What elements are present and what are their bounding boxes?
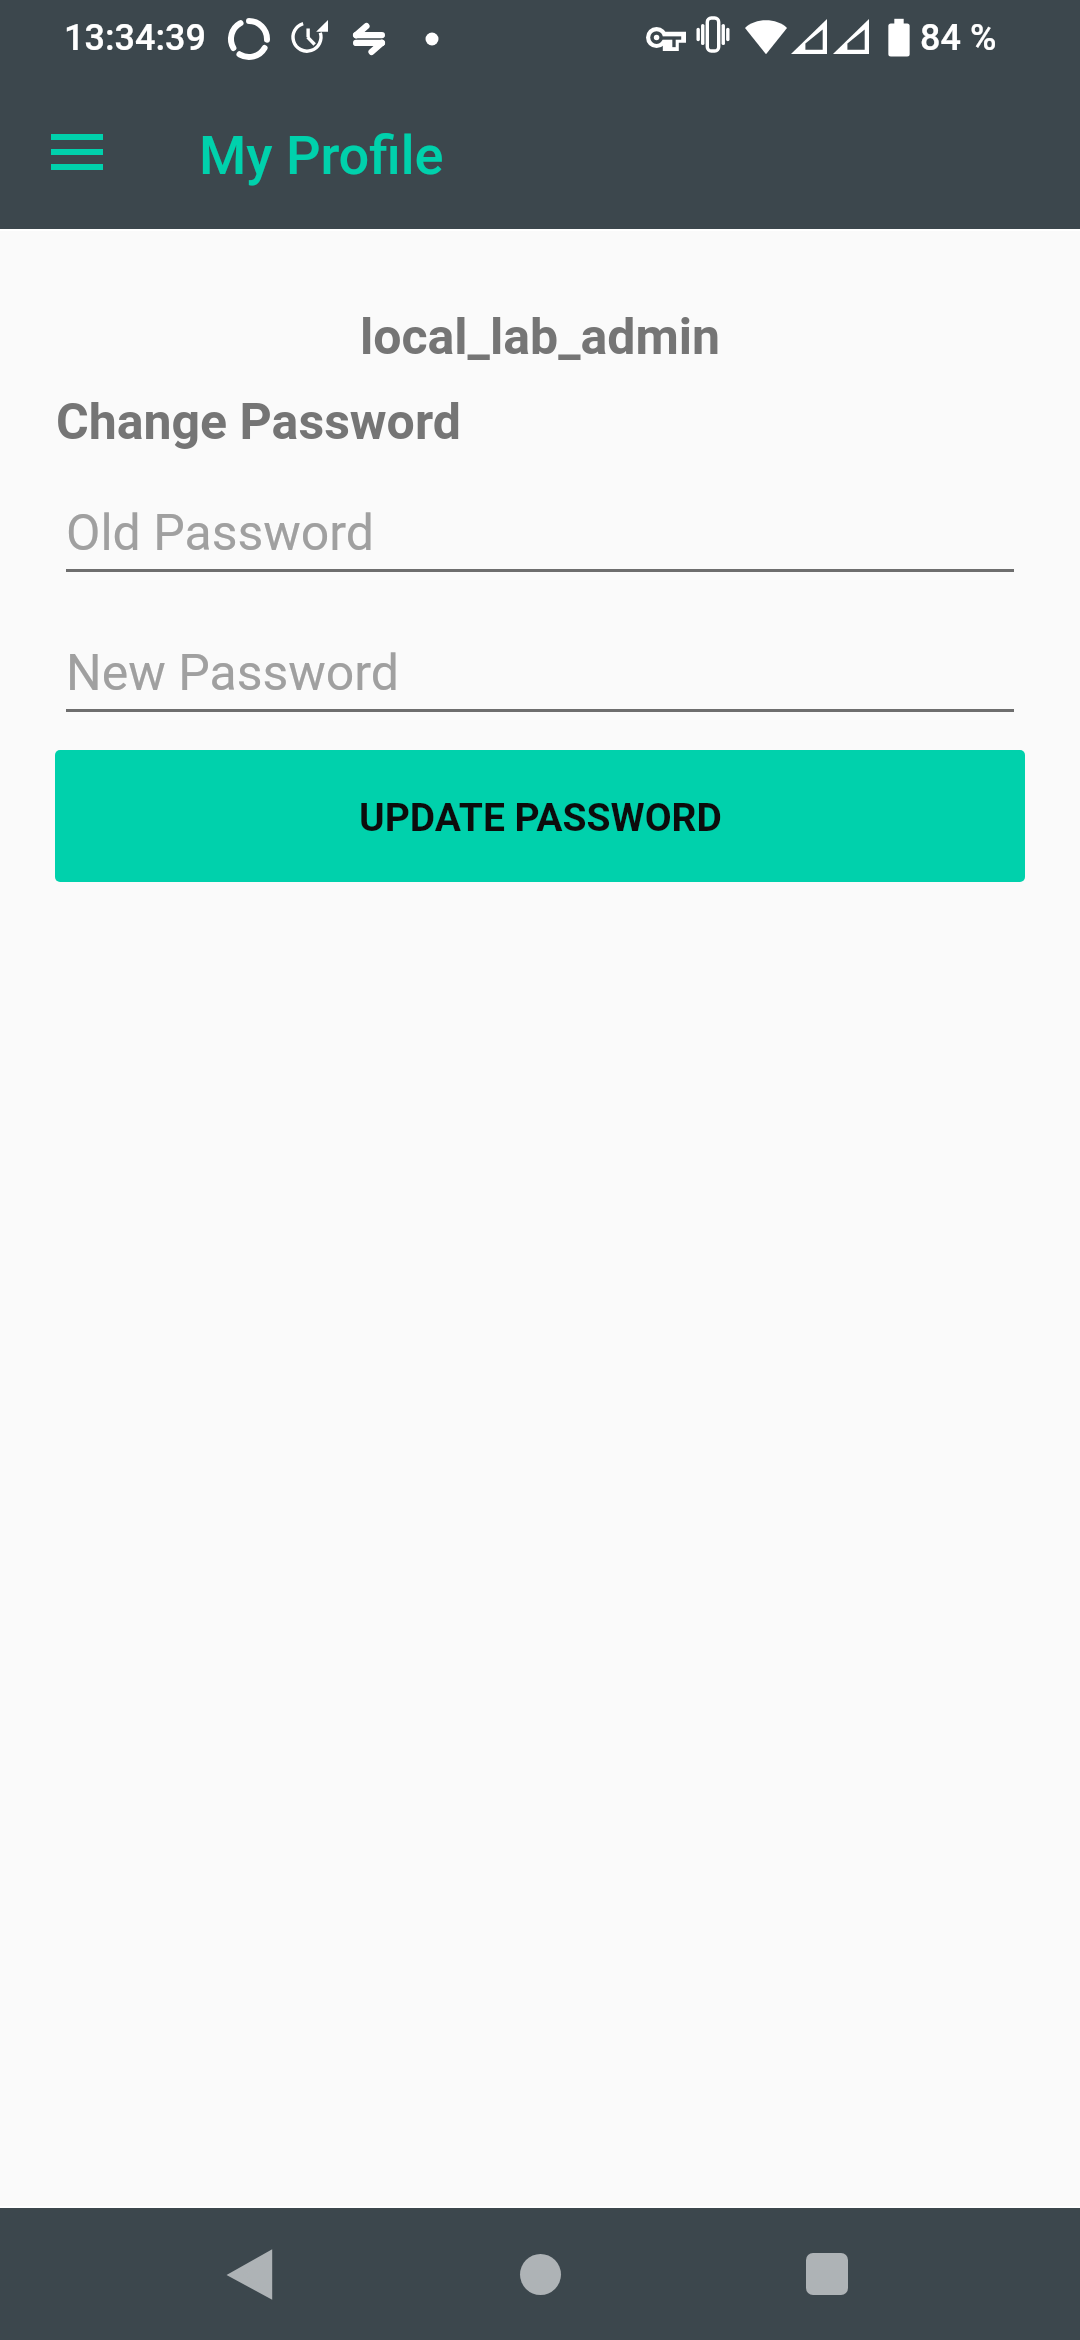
staticText: Old Password — [66, 504, 375, 563]
staticText: 84 % — [920, 17, 997, 59]
staticText: UPDATE PASSWORD — [359, 795, 722, 841]
button[interactable]: Back — [189, 2214, 309, 2334]
button[interactable]: Open navigation drawer — [27, 102, 127, 202]
staticText: New Password — [66, 644, 400, 703]
button[interactable]: Home — [480, 2214, 600, 2334]
staticText: My Profile — [199, 124, 444, 187]
button[interactable]: UPDATE PASSWORD — [55, 750, 1025, 882]
button[interactable]: Recent apps — [767, 2214, 887, 2334]
staticText: Change Password — [56, 393, 461, 452]
staticText: 13:34:39 — [64, 17, 206, 59]
staticText: local_lab_admin — [0, 308, 1080, 367]
